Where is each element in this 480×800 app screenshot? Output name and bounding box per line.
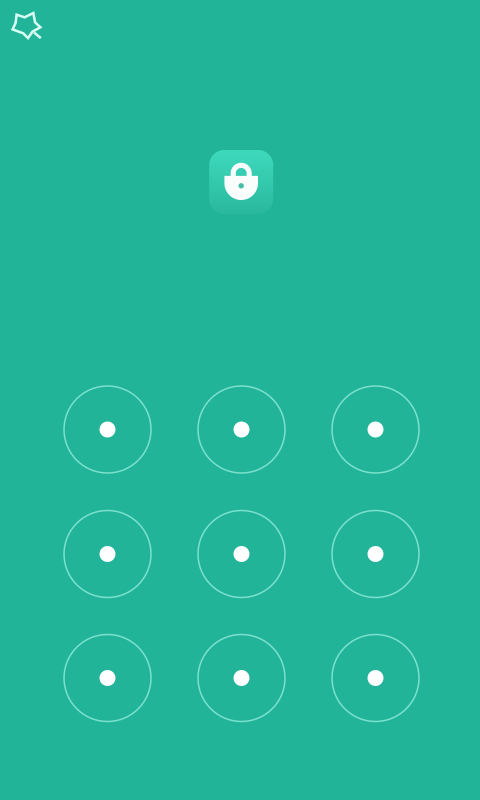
- button[interactable]: Pattern dot 4: [64, 510, 151, 597]
- button[interactable]: Magic: [8, 6, 48, 46]
- button[interactable]: Pattern dot 5: [198, 510, 285, 597]
- button[interactable]: Pattern dot 8: [198, 634, 285, 721]
- button[interactable]: Pattern dot 7: [64, 634, 151, 721]
- button[interactable]: Pattern dot 6: [332, 510, 419, 597]
- button[interactable]: Pattern dot 9: [332, 634, 419, 721]
- button[interactable]: Pattern dot 3: [332, 386, 419, 473]
- button[interactable]: Pattern dot 2: [198, 386, 285, 473]
- button[interactable]: Pattern dot 1: [64, 386, 151, 473]
- button[interactable]: Locked: [209, 150, 273, 214]
